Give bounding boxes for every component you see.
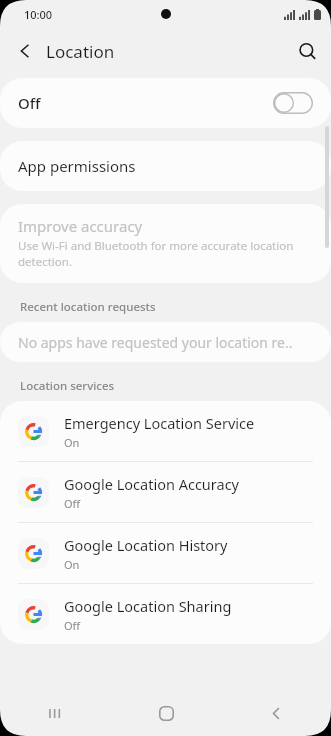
button[interactable]: Emergency Location Service bbox=[0, 401, 331, 461]
staticText: On bbox=[64, 557, 80, 572]
staticText: Improve accuracy bbox=[18, 216, 143, 236]
staticText: Use Wi-Fi and Bluetooth for more accurat… bbox=[18, 238, 297, 269]
staticText: Off bbox=[64, 496, 81, 511]
staticText: Location bbox=[46, 40, 115, 63]
staticText: Location services bbox=[20, 378, 115, 394]
staticText: On bbox=[64, 435, 80, 450]
button[interactable]: Back bbox=[0, 34, 42, 68]
button[interactable]: Location toggle, off bbox=[273, 92, 313, 114]
staticText: Emergency Location Service bbox=[64, 413, 255, 433]
button[interactable]: Google Location Accuracy bbox=[0, 462, 331, 522]
staticText: Off bbox=[18, 93, 273, 113]
button[interactable]: Recent apps bbox=[0, 690, 111, 736]
staticText: Google Location Accuracy bbox=[64, 474, 239, 494]
staticText: App permissions bbox=[18, 156, 136, 176]
button[interactable]: Off bbox=[0, 78, 331, 128]
button[interactable]: Home bbox=[111, 690, 221, 736]
button[interactable]: Back bbox=[221, 690, 331, 736]
button[interactable]: Google Location History bbox=[0, 523, 331, 583]
button[interactable]: Improve accuracy bbox=[0, 204, 331, 283]
button[interactable]: No apps have requested your location re.… bbox=[0, 322, 331, 362]
button[interactable]: Google Location Sharing bbox=[0, 584, 331, 644]
staticText: Google Location Sharing bbox=[64, 596, 232, 616]
button[interactable]: Search bbox=[284, 32, 331, 71]
button[interactable]: App permissions bbox=[0, 141, 331, 191]
staticText: Off bbox=[64, 618, 81, 633]
staticText: 10:00 bbox=[24, 7, 53, 22]
staticText: No apps have requested your location re.… bbox=[18, 333, 293, 352]
staticText: Recent location requests bbox=[20, 299, 156, 315]
staticText: Google Location History bbox=[64, 535, 228, 555]
